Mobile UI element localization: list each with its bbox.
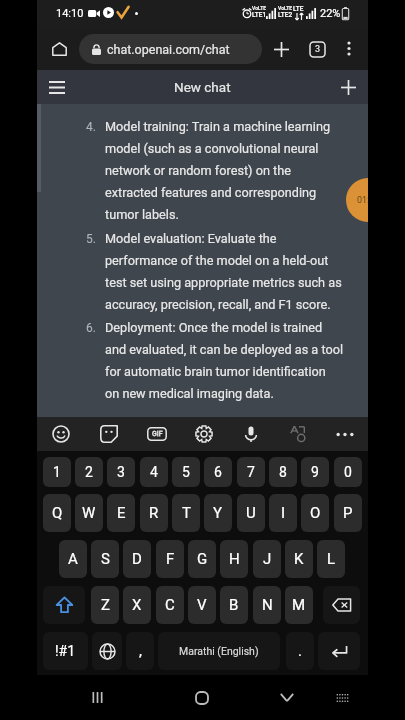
button[interactable]: 6	[204, 457, 232, 487]
button[interactable]: More options	[334, 33, 364, 63]
staticText: Z	[101, 596, 110, 614]
button[interactable]: Y	[204, 494, 232, 532]
staticText: A	[68, 550, 78, 568]
button[interactable]: .	[286, 632, 314, 670]
button[interactable]: 3	[107, 457, 135, 487]
staticText: VoLTE	[252, 5, 267, 11]
staticText: 5.	[37, 232, 96, 246]
button[interactable]: 5	[172, 457, 200, 487]
button[interactable]: GIF	[133, 417, 180, 451]
button[interactable]: Keyboard layout	[322, 675, 362, 720]
button[interactable]: R	[140, 494, 168, 532]
button[interactable]: Q	[43, 494, 71, 532]
button[interactable]: F	[156, 540, 184, 578]
button[interactable]: Tabs	[301, 33, 333, 65]
button[interactable]: B	[220, 586, 248, 624]
staticText: 9	[311, 464, 319, 480]
button[interactable]: Voice input	[227, 417, 274, 451]
button[interactable]: V	[188, 586, 216, 624]
button[interactable]: Timer	[346, 178, 368, 222]
button[interactable]: New chat	[331, 70, 365, 104]
staticText: V	[197, 596, 207, 614]
button[interactable]: N	[253, 586, 281, 624]
staticText: Marathi (English)	[179, 645, 259, 657]
button[interactable]: S	[91, 540, 119, 578]
staticText: .	[298, 642, 302, 660]
button[interactable]: U	[237, 494, 265, 532]
button[interactable]: P	[334, 494, 362, 532]
button[interactable]: M	[285, 586, 313, 624]
staticText: 22%	[320, 7, 341, 20]
button[interactable]: 8	[269, 457, 297, 487]
button[interactable]: G	[188, 540, 216, 578]
button[interactable]: E	[107, 494, 135, 532]
button[interactable]: 2	[75, 457, 103, 487]
staticText: !#1	[55, 643, 76, 659]
button[interactable]: Translate	[274, 417, 321, 451]
staticText: B	[229, 596, 239, 614]
staticText: chat.openai.com/chat	[107, 42, 230, 57]
staticText: Model training: Train a machine learning…	[105, 119, 343, 222]
staticText: R	[149, 504, 159, 522]
button[interactable]: T	[172, 494, 200, 532]
staticText: LTE1	[252, 11, 267, 19]
button[interactable]: I	[269, 494, 297, 532]
staticText: 2	[85, 464, 93, 480]
staticText: Q	[52, 504, 63, 522]
button[interactable]: ,	[126, 632, 154, 670]
button[interactable]: A	[59, 540, 87, 578]
button[interactable]: H	[220, 540, 248, 578]
button[interactable]: Enter	[318, 632, 360, 670]
button[interactable]: L	[317, 540, 345, 578]
staticText: 3	[315, 44, 321, 55]
button[interactable]: Settings	[180, 417, 227, 451]
button[interactable]: Home	[43, 33, 75, 65]
button[interactable]: O	[301, 494, 329, 532]
button[interactable]: J	[253, 540, 281, 578]
staticText: U	[246, 504, 256, 522]
button[interactable]: More options	[321, 417, 368, 451]
staticText: H	[229, 550, 240, 568]
button[interactable]: D	[123, 540, 151, 578]
button[interactable]: New tab	[265, 33, 297, 65]
button[interactable]: Recent apps	[77, 675, 117, 720]
button[interactable]: Hide keyboard	[267, 675, 307, 720]
button[interactable]: Z	[91, 586, 119, 624]
button[interactable]: 1	[43, 457, 71, 487]
staticText: W	[82, 504, 96, 522]
staticText: GIF	[152, 430, 163, 438]
staticText: 6	[214, 464, 222, 480]
button[interactable]: 0	[334, 457, 362, 487]
button[interactable]: 7	[237, 457, 265, 487]
button[interactable]: 4	[140, 457, 168, 487]
button[interactable]: Marathi (English)	[158, 632, 280, 670]
button[interactable]: X	[123, 586, 151, 624]
button[interactable]: Shift	[43, 586, 85, 624]
button[interactable]: Backspace	[323, 586, 360, 624]
staticText: LTE2	[278, 11, 293, 19]
staticText: Deployment: Once the model is trained an…	[105, 320, 343, 401]
staticText: G	[197, 550, 208, 568]
button[interactable]: chat.openai.com/chat	[79, 34, 262, 64]
button[interactable]: 9	[301, 457, 329, 487]
button[interactable]: Home	[182, 675, 222, 720]
staticText: Y	[213, 504, 223, 522]
staticText: L	[327, 550, 336, 568]
button[interactable]: !#1	[43, 632, 88, 670]
button[interactable]: Stickers	[85, 417, 133, 451]
button[interactable]: K	[285, 540, 313, 578]
staticText: M	[292, 596, 306, 614]
button[interactable]: W	[75, 494, 103, 532]
staticText: New chat	[174, 79, 231, 95]
staticText: 4.	[37, 120, 96, 134]
staticText: 3	[117, 464, 125, 480]
staticText: 5	[182, 464, 190, 480]
staticText: 1	[53, 464, 61, 480]
button[interactable]: Change language	[92, 632, 122, 670]
button[interactable]: Menu	[40, 70, 74, 104]
staticText: P	[343, 504, 353, 522]
button[interactable]: C	[156, 586, 184, 624]
staticText: C	[165, 596, 175, 614]
button[interactable]: Emoji	[37, 417, 85, 451]
staticText: X	[132, 596, 142, 614]
